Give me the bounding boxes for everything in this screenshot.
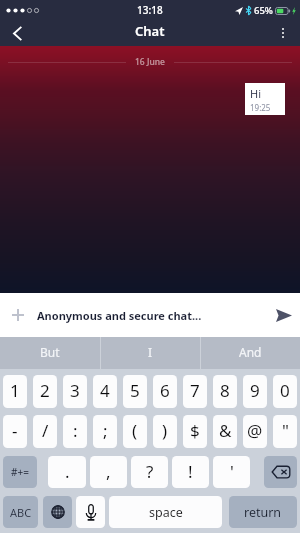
button[interactable]: - (3, 415, 27, 448)
button[interactable]: ; (93, 415, 117, 448)
button[interactable]: Back (0, 20, 34, 46)
staticText: 65% (254, 4, 273, 17)
staticText: 3 (70, 379, 80, 402)
button[interactable]: 6 (153, 375, 177, 408)
button[interactable]: ) (153, 415, 177, 448)
button[interactable]: 8 (213, 375, 237, 408)
staticText: ABC (10, 505, 32, 520)
staticText: 1 (10, 379, 20, 402)
staticText: / (42, 419, 49, 442)
staticText: " (282, 419, 289, 442)
staticText: But (40, 344, 60, 360)
button[interactable]: , (90, 456, 127, 488)
button[interactable]: I (101, 337, 200, 369)
staticText: , (106, 460, 111, 483)
button[interactable]: More options (266, 20, 300, 46)
staticText: 0 (280, 379, 290, 402)
button[interactable]: Send (264, 293, 300, 337)
staticText: 8 (220, 379, 230, 402)
button[interactable]: Add attachment (0, 293, 34, 337)
button[interactable]: 3 (63, 375, 87, 408)
staticText: - (12, 419, 18, 442)
button[interactable]: ! (172, 456, 209, 488)
button[interactable]: ABC (3, 496, 38, 528)
staticText: ; (103, 419, 108, 442)
button[interactable]: And (201, 337, 300, 369)
staticText: Chat (135, 22, 165, 40)
staticText: 6 (160, 379, 170, 402)
button[interactable]: 4 (93, 375, 117, 408)
staticText: 9 (250, 379, 260, 402)
button[interactable]: Change keyboard (43, 496, 72, 528)
staticText: ! (188, 460, 193, 483)
button[interactable]: 2 (33, 375, 57, 408)
button[interactable]: #+= (3, 456, 37, 488)
button[interactable]: return (229, 496, 297, 528)
button[interactable]: ? (131, 456, 168, 488)
button[interactable]: 0 (273, 375, 297, 408)
button[interactable]: 5 (123, 375, 147, 408)
staticText: #+= (11, 465, 29, 479)
staticText: 16 June (135, 56, 165, 68)
staticText: 19:25 (250, 102, 271, 113)
staticText: ' (230, 460, 234, 483)
staticText: return (244, 504, 282, 521)
button[interactable]: Voice input (76, 496, 105, 528)
staticText: 5 (130, 379, 140, 402)
staticText: 13:18 (137, 3, 163, 17)
button[interactable]: space (109, 496, 222, 528)
button[interactable]: Delete (264, 456, 297, 488)
staticText: . (65, 460, 70, 483)
staticText: Hi (250, 86, 261, 101)
button[interactable]: $ (183, 415, 207, 448)
staticText: ( (132, 419, 138, 442)
button[interactable]: 9 (243, 375, 267, 408)
button[interactable]: / (33, 415, 57, 448)
staticText: space (149, 504, 183, 521)
button[interactable]: " (273, 415, 297, 448)
staticText: I (148, 344, 153, 360)
staticText: $ (190, 419, 200, 442)
button[interactable]: & (213, 415, 237, 448)
staticText: And (239, 344, 262, 360)
staticText: @ (247, 419, 263, 442)
button[interactable]: @ (243, 415, 267, 448)
staticText: Anonymous and secure chat... (37, 308, 202, 323)
staticText: ? (146, 460, 154, 483)
button[interactable]: ' (213, 456, 250, 488)
button[interactable]: But (0, 337, 100, 369)
staticText: ) (162, 419, 168, 442)
button[interactable]: 1 (3, 375, 27, 408)
button[interactable]: : (63, 415, 87, 448)
button[interactable]: 7 (183, 375, 207, 408)
button[interactable]: ( (123, 415, 147, 448)
staticText: & (219, 419, 232, 442)
staticText: 7 (190, 379, 200, 402)
staticText: 2 (40, 379, 50, 402)
staticText: 4 (100, 379, 110, 402)
button[interactable]: . (48, 456, 86, 488)
staticText: : (73, 419, 78, 442)
